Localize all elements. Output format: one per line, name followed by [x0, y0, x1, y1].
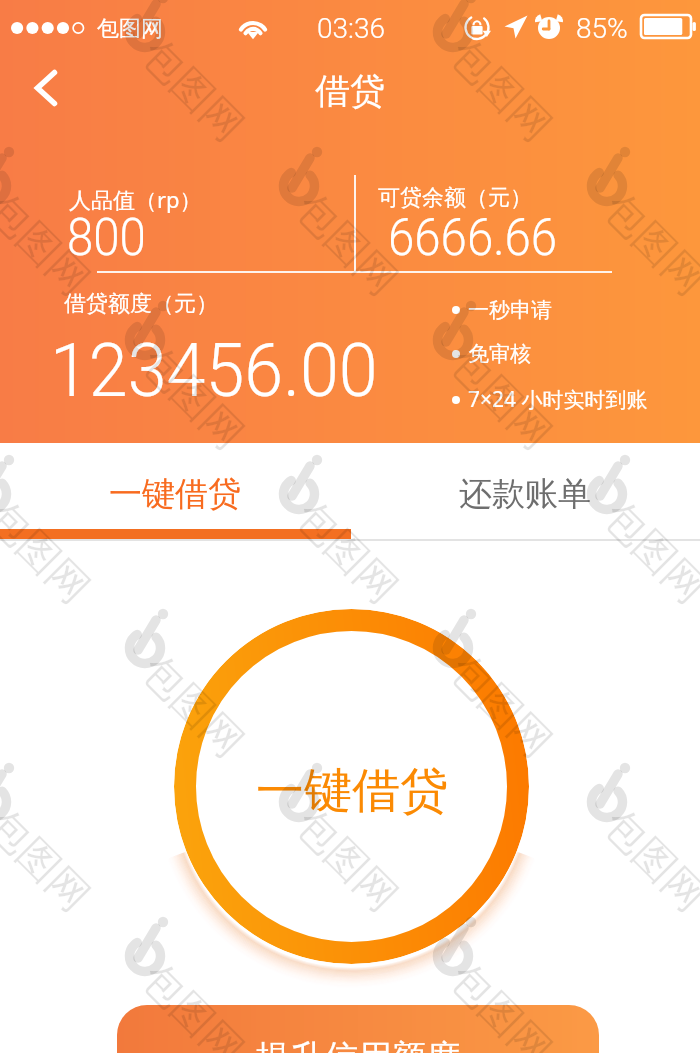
- staticText: 7×24 小时实时到账: [468, 385, 648, 414]
- button[interactable]: 提升信用额度: [117, 1005, 599, 1053]
- staticText: 85%: [576, 12, 628, 45]
- staticText: 03:36: [317, 12, 386, 45]
- staticText: 包图网: [97, 15, 163, 43]
- staticText: 借贷: [315, 69, 385, 113]
- staticText: 免审核: [468, 341, 531, 367]
- button[interactable]: 一键借贷: [0, 443, 350, 529]
- staticText: 800: [67, 208, 146, 268]
- staticText: 一秒申请: [468, 297, 552, 323]
- staticText: 提升信用额度: [256, 1036, 460, 1053]
- staticText: 123456.00: [50, 327, 379, 414]
- button[interactable]: Back: [20, 64, 72, 112]
- staticText: 6666.66: [388, 208, 557, 268]
- staticText: 借贷额度（元）: [64, 290, 218, 318]
- button[interactable]: 一键借贷: [174, 609, 529, 964]
- staticText: 还款账单: [459, 473, 591, 515]
- staticText: 可贷余额（元）: [378, 184, 532, 212]
- staticText: 一键借贷: [109, 473, 241, 515]
- button[interactable]: 还款账单: [350, 443, 700, 529]
- staticText: 人品值（rp）: [69, 184, 202, 214]
- staticText: 一键借贷: [256, 761, 448, 821]
